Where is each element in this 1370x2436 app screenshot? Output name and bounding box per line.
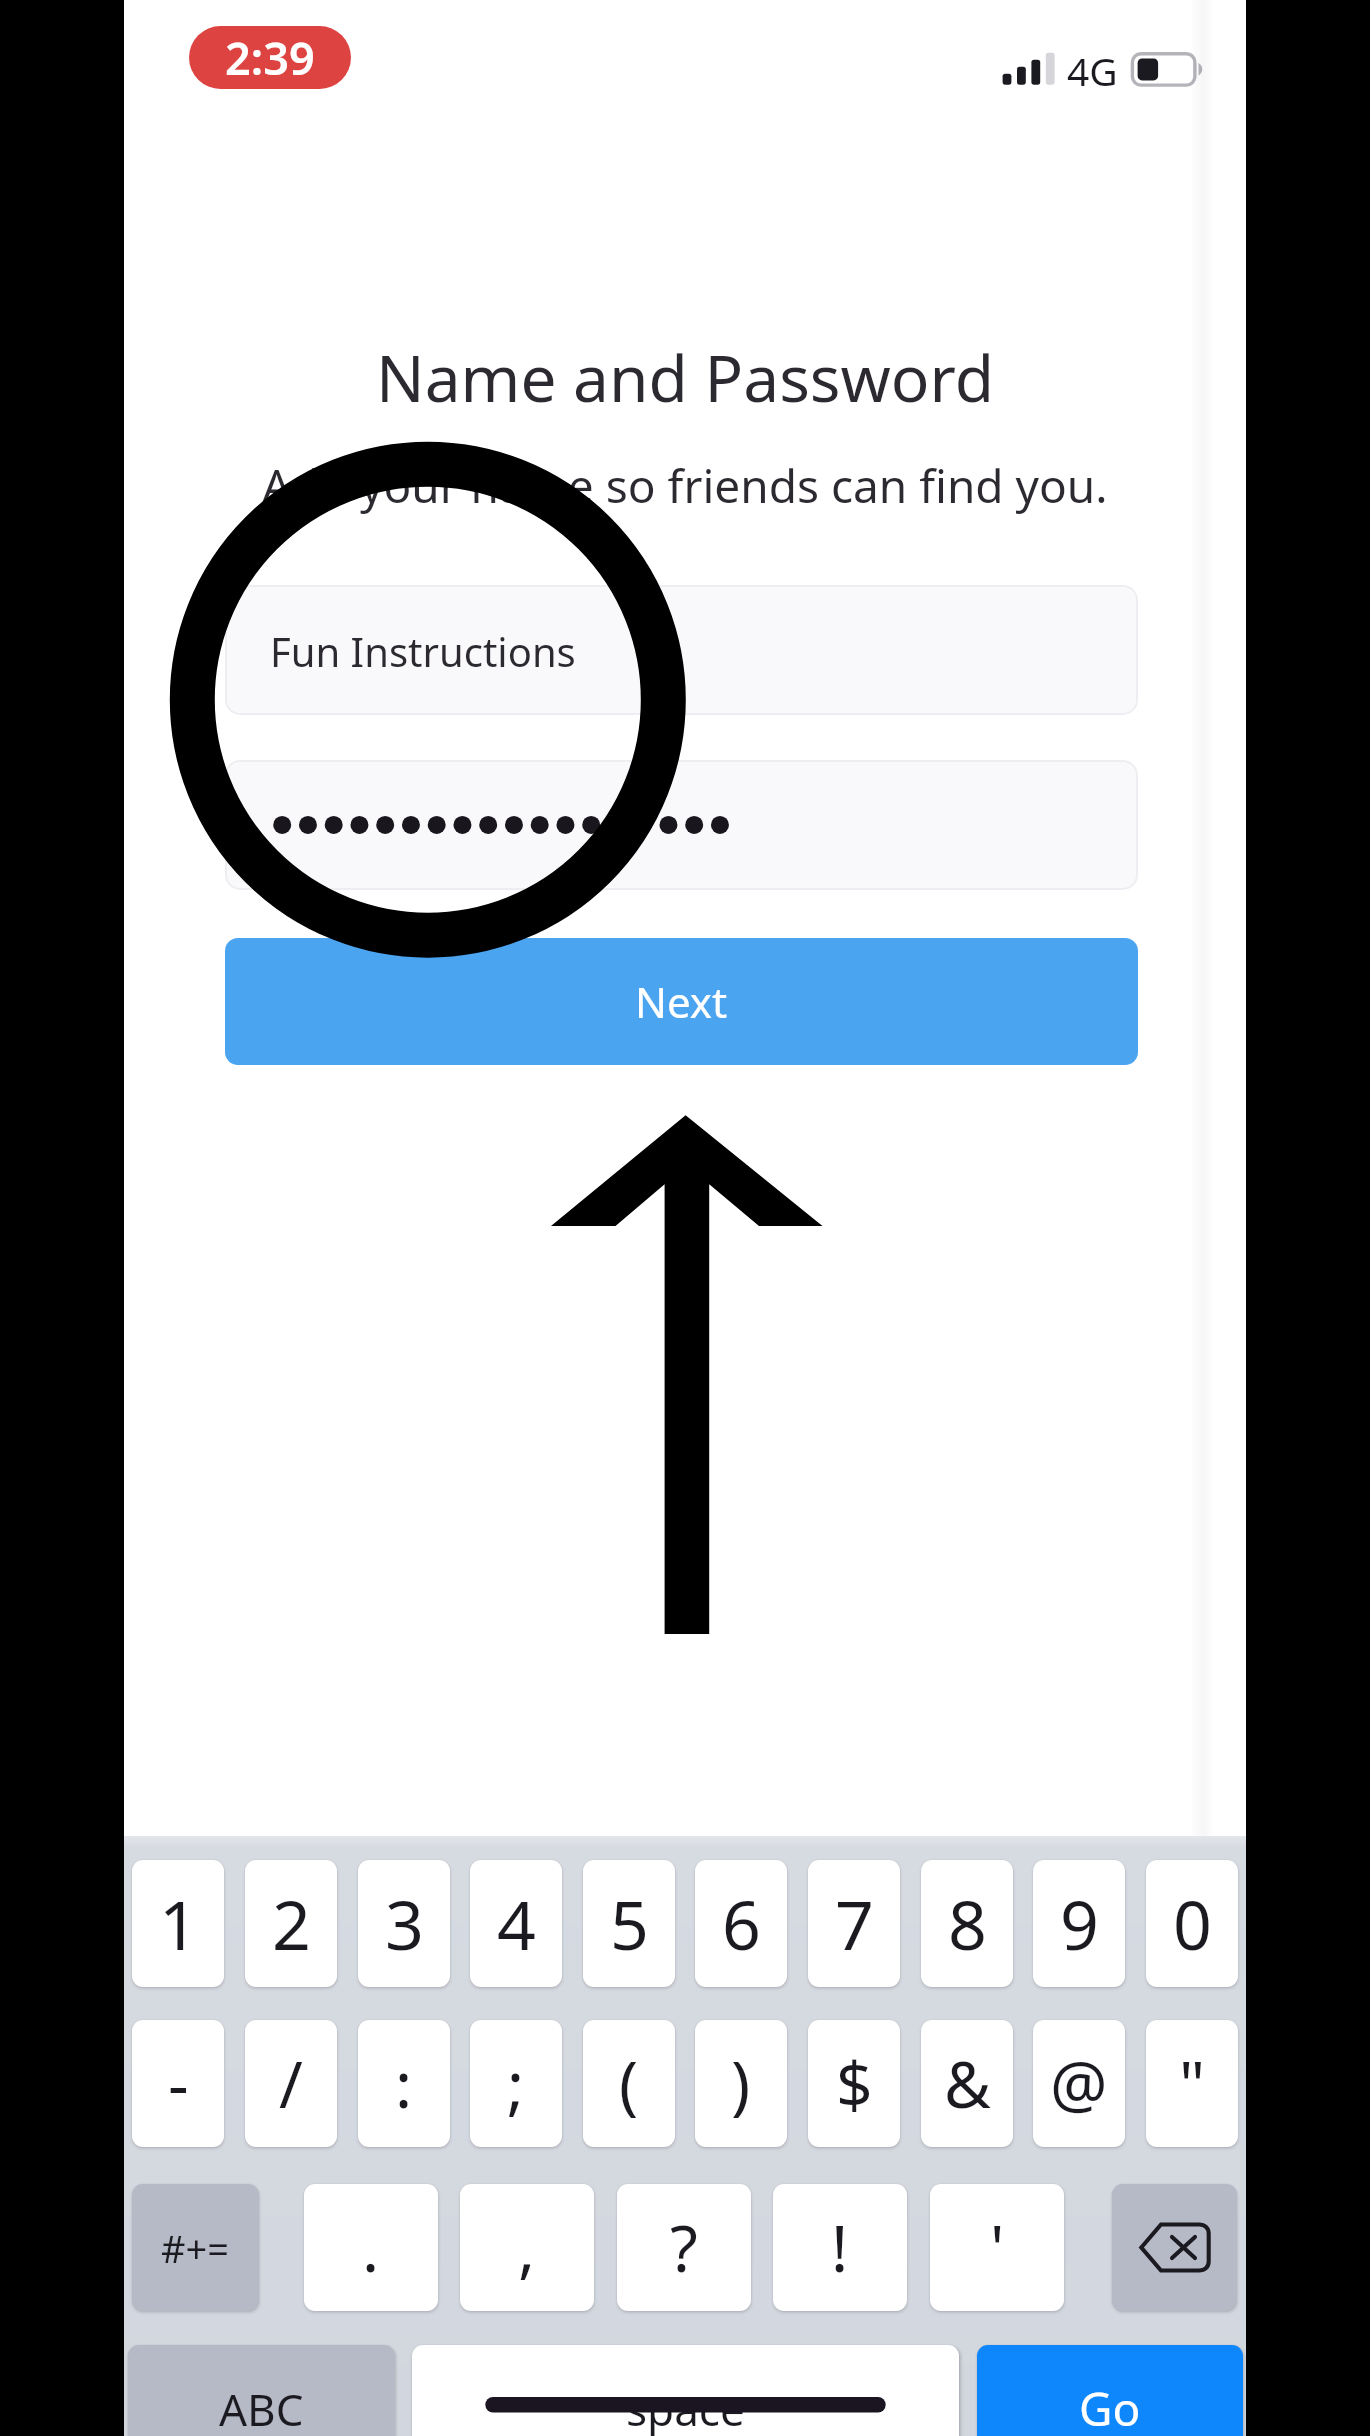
button[interactable]: & xyxy=(921,2020,1013,2147)
staticText: " xyxy=(1179,2040,1206,2127)
button[interactable]: 0 xyxy=(1146,1860,1238,1987)
staticText: 7 xyxy=(835,1877,874,1970)
staticText: Next xyxy=(635,973,728,1030)
button[interactable]: , xyxy=(460,2184,594,2311)
button[interactable]: 3 xyxy=(358,1860,450,1987)
staticText: 9 xyxy=(1060,1877,1099,1970)
button[interactable]: ! xyxy=(773,2184,907,2311)
staticText: $ xyxy=(836,2040,873,2127)
staticText: ABC xyxy=(219,2379,304,2436)
staticText: #+= xyxy=(161,2222,230,2274)
button[interactable]: 6 xyxy=(695,1860,787,1987)
staticText: / xyxy=(279,2040,303,2127)
button[interactable]: 9 xyxy=(1033,1860,1125,1987)
button[interactable]: ( xyxy=(583,2020,675,2147)
staticText: 5 xyxy=(610,1877,649,1970)
staticText: 1 xyxy=(159,1877,198,1970)
button[interactable]: - xyxy=(132,2020,224,2147)
staticText: ! xyxy=(831,2204,849,2291)
staticText: ) xyxy=(731,2040,751,2127)
staticText: Go xyxy=(1079,2377,1141,2436)
button[interactable]: ABC xyxy=(128,2345,395,2436)
button[interactable]: space xyxy=(412,2345,959,2436)
staticText: Name and Password xyxy=(376,334,995,421)
button[interactable]: @ xyxy=(1033,2020,1125,2147)
button[interactable]: 8 xyxy=(921,1860,1013,1987)
button[interactable]: 2 xyxy=(245,1860,337,1987)
button[interactable]: 5 xyxy=(583,1860,675,1987)
staticText: , xyxy=(518,2204,536,2291)
button[interactable]: 4 xyxy=(470,1860,562,1987)
staticText: space xyxy=(626,2379,745,2436)
button[interactable]: Fun Instructions xyxy=(225,585,1138,715)
staticText: & xyxy=(944,2040,991,2127)
staticText: ? xyxy=(670,2204,698,2291)
staticText: Fun Instructions xyxy=(270,624,576,678)
staticText: 8 xyxy=(948,1877,987,1970)
staticText: 6 xyxy=(722,1877,761,1970)
staticText: ; xyxy=(507,2040,525,2127)
staticText: : xyxy=(395,2040,413,2127)
button[interactable]: . xyxy=(304,2184,438,2311)
staticText: 2 xyxy=(272,1877,311,1970)
staticText: 4 xyxy=(497,1877,536,1970)
staticText: 4G xyxy=(1067,44,1118,97)
staticText: @ xyxy=(1050,2040,1108,2127)
button[interactable]: ' xyxy=(930,2184,1064,2311)
staticText: 2:39 xyxy=(225,27,315,88)
staticText: 0 xyxy=(1173,1877,1212,1970)
button[interactable]: #+= xyxy=(132,2184,259,2311)
staticText: Add your name so friends can find you. xyxy=(262,454,1108,517)
staticText: . xyxy=(362,2204,380,2291)
button[interactable]: 7 xyxy=(808,1860,900,1987)
staticText: - xyxy=(168,2040,189,2127)
button[interactable]: Password xyxy=(225,760,1138,890)
staticText: ( xyxy=(619,2040,639,2127)
button[interactable]: Screen recording, 2 minutes 39 seconds xyxy=(189,26,351,89)
button[interactable]: 1 xyxy=(132,1860,224,1987)
button[interactable]: Next xyxy=(225,938,1138,1065)
button[interactable]: Go xyxy=(977,2345,1243,2436)
button[interactable]: Backspace xyxy=(1112,2184,1237,2311)
button[interactable]: ; xyxy=(470,2020,562,2147)
other: Battery low xyxy=(1124,44,1210,94)
staticText: ' xyxy=(990,2204,1005,2291)
staticText: 3 xyxy=(385,1877,424,1970)
button[interactable]: ) xyxy=(695,2020,787,2147)
button[interactable]: : xyxy=(358,2020,450,2147)
button[interactable]: " xyxy=(1146,2020,1238,2147)
button[interactable]: $ xyxy=(808,2020,900,2147)
other: Cellular signal strength xyxy=(994,40,1089,92)
button[interactable]: ? xyxy=(617,2184,751,2311)
button[interactable]: / xyxy=(245,2020,337,2147)
